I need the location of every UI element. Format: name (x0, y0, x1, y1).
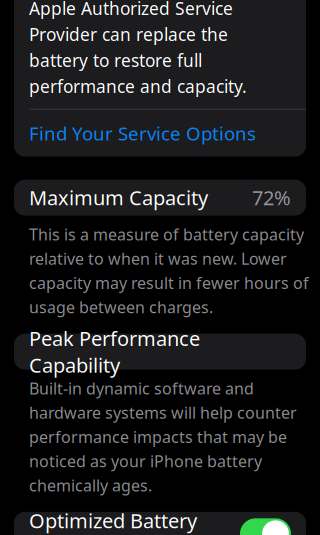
staticText: This is a measure of battery capacity re… (29, 224, 309, 318)
button[interactable]: Peak Performance Capability (14, 334, 306, 370)
staticText: Built-in dynamic software and hardware s… (29, 378, 297, 496)
staticText: Find Your Service Options (29, 121, 256, 146)
staticText: Maximum Capacity (29, 184, 208, 211)
button[interactable]: Find Your Service Options (14, 110, 306, 157)
staticText: Your battery's health is significantly d… (29, 0, 247, 98)
staticText: Peak Performance Capability (29, 325, 200, 378)
button[interactable]: Optimized Battery Charging (14, 512, 306, 535)
staticText: 72% (252, 184, 291, 211)
staticText: Optimized Battery Charging (29, 507, 197, 535)
